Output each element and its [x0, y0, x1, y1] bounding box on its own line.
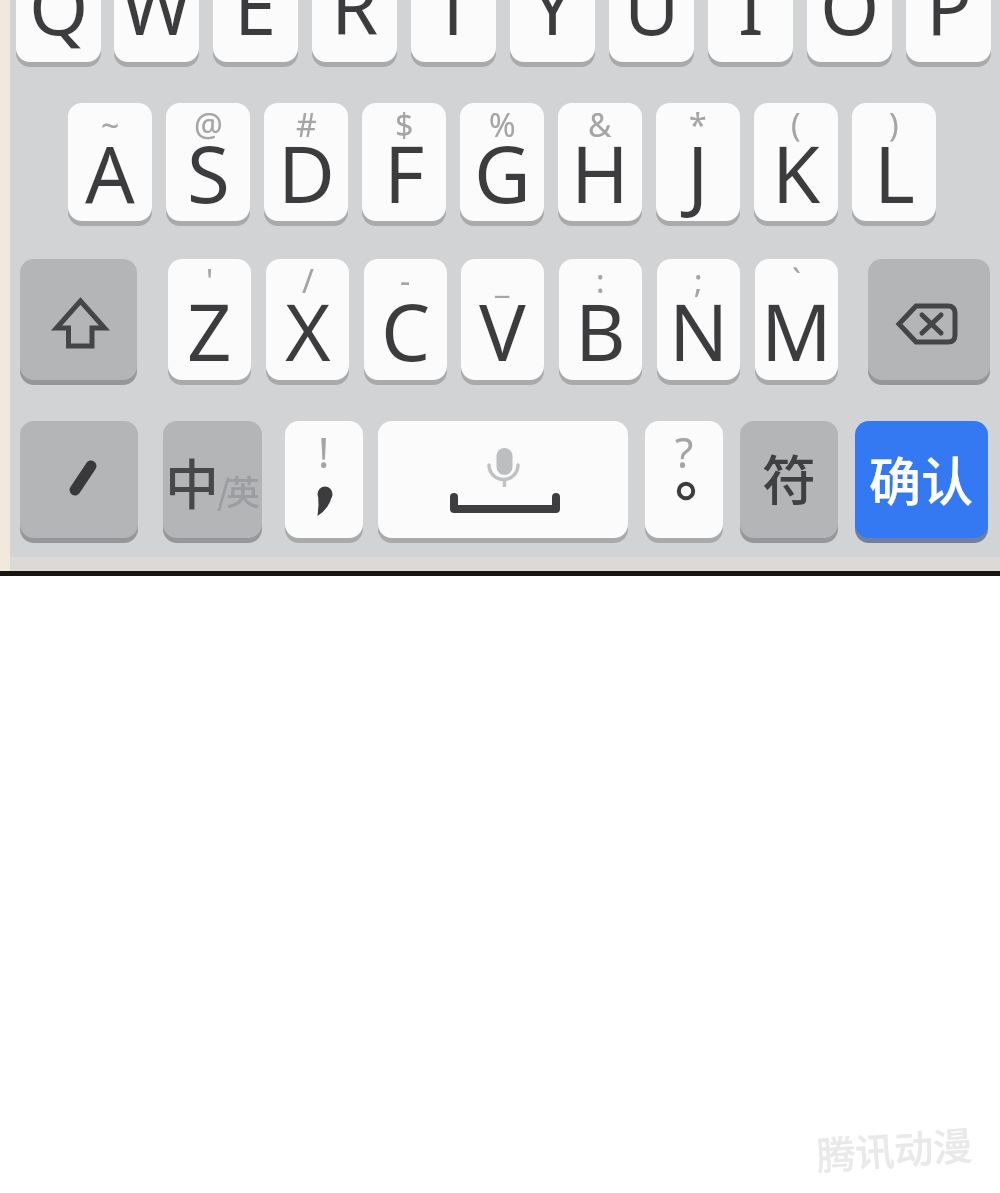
staticText: R [331, 0, 379, 58]
button[interactable] [868, 259, 990, 380]
staticText: M [761, 278, 832, 380]
button[interactable]: W [114, 0, 199, 62]
staticText: A [85, 120, 135, 221]
staticText: Q [29, 0, 89, 58]
staticText: $ [395, 103, 414, 147]
button[interactable]: ) [852, 103, 936, 221]
staticText: : [596, 259, 605, 303]
button[interactable]: ; [657, 259, 740, 380]
staticText: % [489, 103, 516, 147]
button[interactable]: T [411, 0, 496, 62]
staticText: X [285, 278, 331, 380]
button[interactable]: ( [754, 103, 838, 221]
button[interactable]: U [609, 0, 694, 62]
button[interactable]: Q [16, 0, 101, 62]
staticText: - [400, 259, 411, 303]
staticText: / [217, 466, 231, 515]
staticText: Y [531, 0, 575, 58]
button[interactable]: E [213, 0, 298, 62]
button[interactable]: 符 [740, 421, 838, 538]
button[interactable]: * [656, 103, 740, 221]
button[interactable] [378, 421, 628, 538]
staticText: S [187, 120, 230, 221]
staticText: G [474, 120, 531, 221]
staticText: W [121, 0, 192, 58]
staticText: P [926, 0, 972, 58]
button[interactable]: I [708, 0, 793, 62]
button[interactable]: Y [510, 0, 595, 62]
staticText: F [384, 120, 425, 221]
staticText: T [432, 0, 475, 58]
button[interactable]: _ [461, 259, 544, 380]
button[interactable]: # [264, 103, 348, 221]
staticText: 确认 [869, 441, 974, 516]
button[interactable]: - [364, 259, 447, 380]
button[interactable]: R [312, 0, 397, 62]
staticText: ! [318, 423, 330, 480]
staticText: I [738, 0, 764, 58]
staticText: J [687, 120, 709, 221]
staticText: ? [675, 423, 694, 480]
staticText: * [689, 103, 707, 147]
button[interactable]: $ [362, 103, 446, 221]
staticText: E [234, 0, 277, 58]
button[interactable]: : [559, 259, 642, 380]
staticText: K [772, 120, 821, 221]
button[interactable]: ? [645, 421, 723, 538]
button[interactable]: ! [285, 421, 363, 538]
button[interactable]: P [906, 0, 991, 62]
staticText: 腾讯动漫 [814, 1115, 975, 1181]
staticText: 英 [226, 466, 260, 515]
staticText: _ [495, 259, 510, 303]
staticText: B [575, 278, 626, 380]
staticText: N [669, 278, 729, 380]
staticText: # [296, 103, 317, 147]
staticText: O [820, 0, 880, 58]
staticText: 符 [762, 438, 816, 516]
staticText: H [571, 120, 629, 221]
button[interactable]: @ [166, 103, 250, 221]
button[interactable]: ` [755, 259, 838, 380]
staticText: ( [791, 103, 801, 147]
button[interactable]: 中 [163, 421, 262, 538]
staticText: D [278, 120, 335, 221]
staticText: ~ [101, 103, 120, 147]
button[interactable]: / [266, 259, 349, 380]
staticText: L [874, 120, 915, 221]
button[interactable]: ~ [68, 103, 152, 221]
button[interactable] [20, 259, 137, 380]
button[interactable]: O [807, 0, 892, 62]
staticText: ` [792, 259, 801, 303]
staticText: ) [889, 103, 899, 147]
staticText: / [302, 259, 314, 303]
button[interactable]: & [558, 103, 642, 221]
button[interactable] [20, 421, 138, 538]
button[interactable]: ' [168, 259, 251, 380]
staticText: C [381, 278, 431, 380]
staticText: Z [187, 278, 232, 380]
staticText: V [479, 278, 526, 380]
staticText: ; [694, 259, 703, 303]
button[interactable]: 确认 [855, 421, 988, 538]
staticText: U [624, 0, 680, 58]
staticText: & [588, 103, 612, 147]
button[interactable]: % [460, 103, 544, 221]
staticText: 中 [165, 442, 219, 520]
staticText: ' [206, 259, 214, 303]
staticText: @ [194, 103, 223, 147]
